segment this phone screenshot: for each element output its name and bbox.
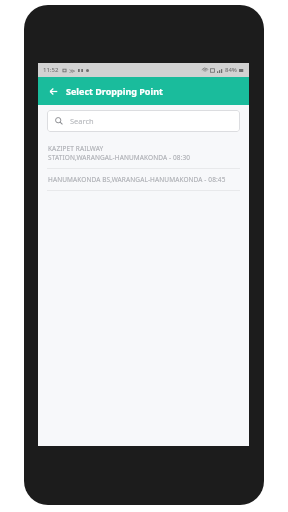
button[interactable]: Search bbox=[47, 110, 240, 132]
staticText: 11:52 bbox=[43, 66, 59, 74]
staticText: STATION,WARANGAL-HANUMAKONDA - 08:30 bbox=[48, 153, 191, 162]
button[interactable]: HANUMAKONDA BS,WARANGAL-HANUMAKONDA - 08… bbox=[38, 169, 249, 190]
button[interactable]: KAZIPET RAILWAY bbox=[38, 138, 249, 168]
staticText: Select Dropping Point bbox=[66, 85, 163, 97]
staticText: HANUMAKONDA BS,WARANGAL-HANUMAKONDA - 08… bbox=[48, 175, 226, 184]
staticText: ≫ bbox=[69, 67, 76, 74]
staticText: Search bbox=[70, 116, 94, 126]
staticText: 84% bbox=[225, 66, 237, 74]
button[interactable]: Back bbox=[46, 84, 60, 98]
staticText: KAZIPET RAILWAY bbox=[48, 144, 104, 153]
